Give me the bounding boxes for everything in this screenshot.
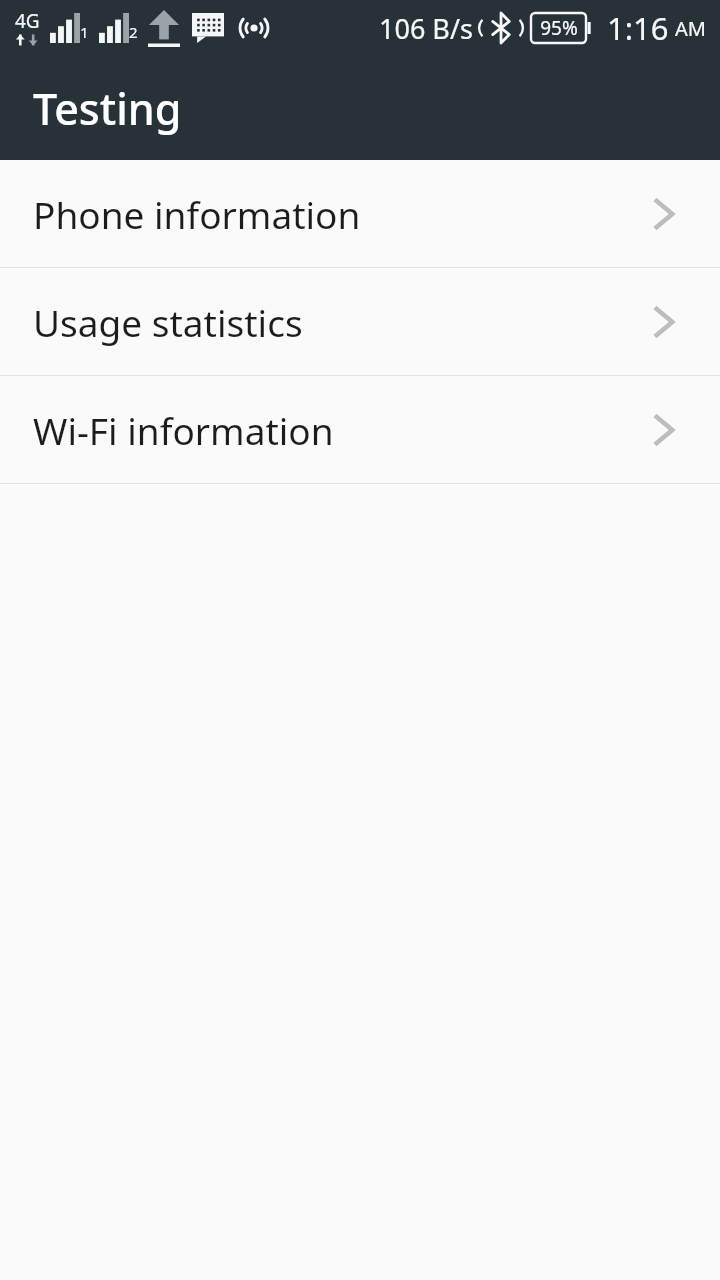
- staticText: 95%: [540, 15, 578, 41]
- other: Open: [652, 412, 678, 448]
- staticText: Testing: [33, 79, 182, 138]
- staticText: Usage statistics: [33, 297, 303, 347]
- staticText: AM: [675, 15, 706, 42]
- staticText: 4G: [15, 8, 40, 34]
- button[interactable]: Usage statistics: [0, 268, 720, 375]
- staticText: 106 B/s: [379, 10, 473, 47]
- staticText: 2: [129, 22, 138, 42]
- other: Open: [652, 304, 678, 340]
- staticText: 1: [80, 22, 89, 42]
- button[interactable]: Wi-Fi information: [0, 376, 720, 483]
- staticText: Phone information: [33, 189, 361, 239]
- staticText: 1:16: [607, 7, 669, 49]
- other: Open: [652, 196, 678, 232]
- staticText: Wi-Fi information: [33, 405, 334, 455]
- button[interactable]: Phone information: [0, 160, 720, 267]
